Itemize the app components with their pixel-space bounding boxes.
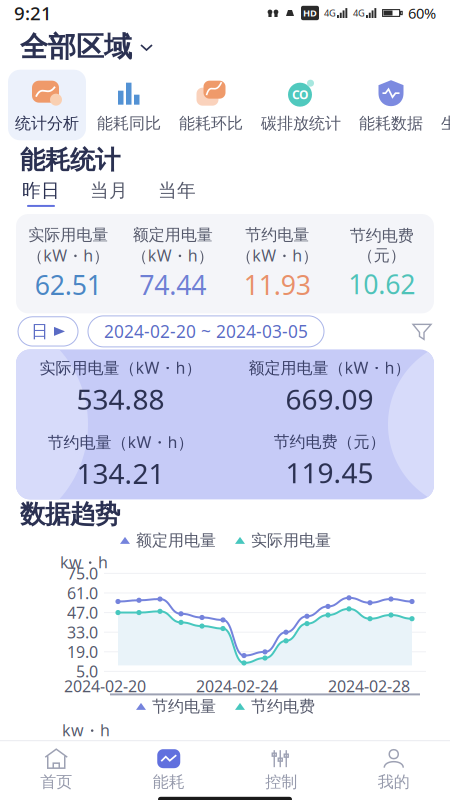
staticText: HD	[303, 7, 317, 19]
staticText: （kW・h）	[236, 245, 318, 266]
staticText: 节约电费	[251, 697, 315, 716]
staticText: 2024-02-24	[196, 675, 278, 697]
staticText: 75.0	[67, 563, 98, 584]
staticText: （kW・h）	[27, 245, 109, 266]
staticText: 4G	[353, 7, 365, 19]
staticText: 2024-02-20	[64, 675, 146, 697]
staticText: 节约电费	[350, 226, 414, 245]
button[interactable]: 我的	[337, 748, 450, 792]
button[interactable]: 能耗环比	[172, 70, 250, 140]
staticText: 实际用电量	[28, 225, 108, 245]
staticText: 能耗	[153, 772, 185, 792]
staticText: CO	[292, 87, 308, 103]
staticText: 节约电量（kW・h）	[47, 431, 193, 453]
staticText: 2024-02-20 ~ 2024-03-05	[104, 320, 308, 343]
staticText: 9:21	[14, 1, 52, 25]
staticText: 11.93	[244, 267, 311, 302]
staticText: 节约电量	[245, 225, 309, 245]
staticText: 当年	[158, 179, 196, 202]
staticText: 2024-02-28	[328, 675, 410, 697]
button[interactable]: 全部区域	[20, 30, 153, 64]
staticText: 134.21	[76, 455, 164, 492]
staticText: 当月	[90, 179, 128, 202]
button[interactable]: 当年	[128, 179, 196, 207]
staticText: 全部区域	[20, 30, 132, 64]
staticText: （kW・h）	[132, 245, 214, 266]
staticText: 能耗统计	[20, 144, 120, 175]
staticText: 首页	[40, 772, 72, 792]
staticText: 33.0	[67, 622, 98, 643]
staticText: 数据趋势	[20, 499, 120, 530]
staticText: 我的	[378, 772, 410, 792]
staticText: 61.0	[67, 582, 98, 604]
staticText: 实际用电量（kW・h）	[39, 357, 201, 378]
staticText: 119.45	[285, 454, 373, 491]
button[interactable]: CO	[254, 70, 348, 140]
button[interactable]: 生命周期	[434, 70, 450, 140]
button[interactable]: 昨日	[22, 179, 60, 207]
staticText: 额定用电量（kW・h）	[248, 357, 410, 378]
staticText: kw・h	[60, 551, 108, 573]
staticText: 能耗数据	[359, 114, 423, 133]
staticText: 669.09	[285, 380, 373, 417]
button[interactable]: 首页	[0, 748, 112, 792]
staticText: 534.88	[76, 380, 164, 417]
staticText: 10.62	[348, 266, 415, 301]
staticText: kw・h	[62, 719, 110, 741]
staticText: 日	[31, 321, 48, 342]
staticText: 节约电费（元）	[273, 432, 385, 452]
staticText: 生命周期	[441, 114, 450, 133]
button[interactable]: 筛选	[412, 322, 432, 340]
button[interactable]: 当月	[60, 179, 128, 207]
staticText: 5.0	[76, 661, 98, 682]
button[interactable]: 能耗数据	[352, 70, 430, 140]
staticText: 19.0	[67, 641, 98, 662]
staticText: 节约电量	[152, 697, 216, 716]
staticText: 额定用电量	[136, 531, 216, 550]
staticText: 4G	[324, 7, 336, 19]
staticText: 47.0	[67, 602, 98, 623]
staticText: （元）	[358, 245, 406, 265]
staticText: 74.44	[139, 267, 206, 302]
staticText: 能耗同比	[97, 114, 161, 133]
staticText: 碳排放统计	[261, 114, 341, 133]
button[interactable]: 能耗	[112, 748, 225, 792]
staticText: 60%	[408, 3, 436, 23]
staticText: 额定用电量	[133, 225, 213, 245]
button[interactable]: 控制	[225, 748, 337, 792]
staticText: 控制	[265, 772, 297, 792]
staticText: 62.51	[35, 267, 102, 302]
staticText: 能耗环比	[179, 114, 243, 133]
button[interactable]: 能耗同比	[90, 70, 168, 140]
button[interactable]: 统计分析	[8, 70, 86, 140]
staticText: 统计分析	[15, 114, 79, 133]
staticText: 昨日	[22, 179, 60, 202]
staticText: 实际用电量	[251, 531, 331, 550]
button[interactable]: 日	[18, 317, 78, 346]
button[interactable]: 2024-02-20 ~ 2024-03-05	[88, 316, 324, 347]
